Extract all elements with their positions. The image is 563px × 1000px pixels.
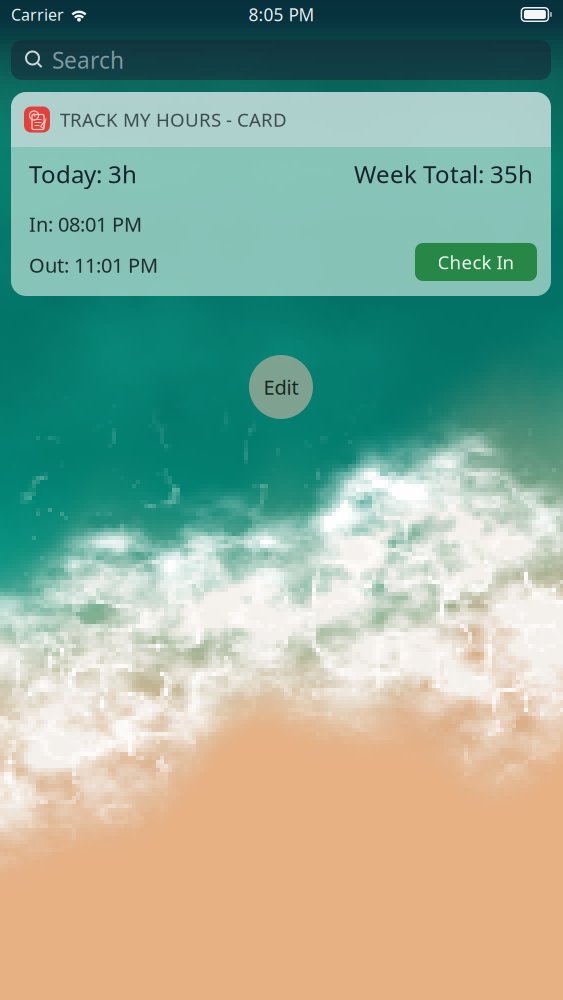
staticText: Edit	[263, 374, 298, 400]
button[interactable]: Edit	[249, 355, 313, 419]
staticText: Week Total: 35h	[354, 158, 533, 190]
button[interactable]: Search	[11, 40, 551, 80]
staticText: Today: 3h	[29, 158, 137, 190]
staticText: TRACK MY HOURS - CARD	[60, 107, 287, 132]
staticText: Check In	[437, 250, 514, 274]
button[interactable]: Check In	[415, 243, 537, 281]
staticText: In: 08:01 PM	[29, 211, 142, 237]
staticText: Out: 11:01 PM	[29, 252, 158, 278]
staticText: Carrier	[11, 4, 64, 25]
staticText: 8:05 PM	[248, 3, 314, 26]
staticText: Search	[52, 45, 124, 75]
